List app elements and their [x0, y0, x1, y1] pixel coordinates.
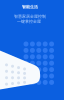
- staticText: 智慧家居全屋控制: [14, 14, 46, 19]
- staticText: 一键掌控全屋: [17, 19, 41, 24]
- staticText: 智能生活: [22, 4, 38, 9]
